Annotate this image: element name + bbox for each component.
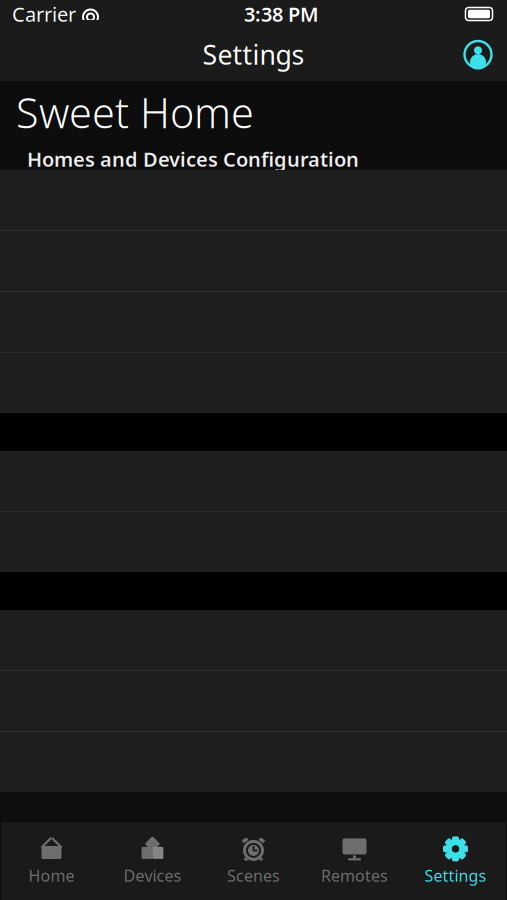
staticText: Sweet Home — [16, 85, 254, 140]
staticText: Home — [28, 865, 74, 886]
staticText: 3:38 PM — [244, 1, 319, 27]
staticText: Scenes — [227, 865, 280, 886]
button[interactable]: Devices — [102, 831, 203, 891]
staticText: Settings — [202, 37, 304, 72]
staticText: Devices — [123, 865, 181, 886]
staticText: Homes and Devices Configuration — [27, 146, 359, 172]
button[interactable]: Profile — [456, 32, 500, 76]
button[interactable]: Home — [1, 831, 102, 891]
staticText: Settings — [424, 865, 486, 886]
button[interactable]: Settings — [405, 831, 506, 891]
button[interactable]: Scenes — [203, 831, 304, 891]
button[interactable]: Remotes — [304, 831, 405, 891]
staticText: Remotes — [321, 865, 388, 886]
staticText: Carrier — [12, 1, 76, 27]
